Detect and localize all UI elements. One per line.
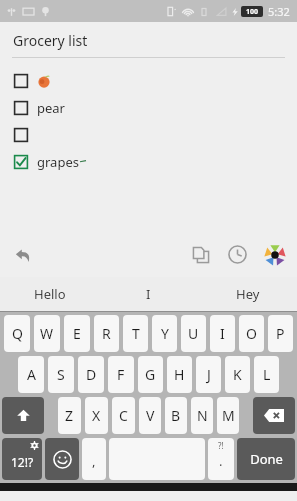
staticText: Grocery list: [13, 31, 88, 50]
other: Unchecked: [14, 128, 28, 142]
button[interactable]: Y: [152, 315, 177, 352]
button[interactable]: Hey: [198, 277, 297, 311]
button[interactable]: ,: [82, 438, 106, 480]
button[interactable]: Stickers: [259, 239, 290, 270]
staticText: X: [92, 406, 101, 425]
staticText: Hey: [236, 285, 260, 303]
staticText: ,: [92, 452, 96, 470]
staticText: I: [220, 324, 225, 343]
button[interactable]: Symbols: [2, 438, 42, 480]
button[interactable]: Done: [237, 438, 295, 480]
staticText: G: [145, 365, 156, 384]
staticText: 5:32: [268, 4, 290, 19]
button[interactable]: I: [99, 277, 198, 311]
button[interactable]: Backspace: [253, 397, 295, 434]
other: Unchecked: [14, 101, 28, 115]
staticText: W: [40, 324, 54, 343]
staticText: Z: [65, 406, 74, 425]
staticText: Done: [250, 450, 283, 468]
button[interactable]: Recent: [222, 239, 253, 270]
button[interactable]: H: [167, 356, 192, 393]
button[interactable]: V: [139, 397, 161, 434]
button[interactable]: Unchecked: [0, 121, 297, 148]
button[interactable]: J: [196, 356, 221, 393]
staticText: L: [263, 365, 271, 384]
button[interactable]: C: [112, 397, 135, 434]
button[interactable]: L: [254, 356, 279, 393]
staticText: F: [117, 365, 125, 384]
button[interactable]: X: [85, 397, 108, 434]
staticText: D: [86, 365, 97, 384]
other: Unchecked: [14, 74, 28, 88]
button[interactable]: K: [225, 356, 250, 393]
staticText: E: [73, 324, 81, 343]
button[interactable]: S: [48, 356, 74, 393]
staticText: R: [102, 324, 111, 343]
button[interactable]: B: [165, 397, 187, 434]
button[interactable]: T: [123, 315, 148, 352]
staticText: pear: [37, 99, 65, 117]
button[interactable]: G: [138, 356, 163, 393]
staticText: K: [233, 365, 242, 384]
button[interactable]: Z: [58, 397, 81, 434]
staticText: .: [219, 452, 223, 470]
button[interactable]: E: [64, 315, 90, 352]
button[interactable]: N: [191, 397, 213, 434]
button[interactable]: I: [210, 315, 235, 352]
staticText: N: [197, 406, 208, 425]
button[interactable]: D: [78, 356, 104, 393]
staticText: P: [276, 324, 285, 343]
staticText: O: [246, 324, 257, 343]
staticText: S: [57, 365, 65, 384]
staticText: I: [146, 285, 151, 303]
staticText: J: [207, 365, 211, 384]
button[interactable]: U: [181, 315, 206, 352]
staticText: Y: [161, 324, 169, 343]
staticText: U: [188, 324, 199, 343]
button[interactable]: P: [268, 315, 293, 352]
button[interactable]: M: [217, 397, 239, 434]
staticText: H: [174, 365, 185, 384]
staticText: T: [132, 324, 140, 343]
button[interactable]: ?!: [208, 438, 234, 480]
button[interactable]: A: [18, 356, 44, 393]
staticText: B: [171, 406, 181, 425]
staticText: 100: [246, 7, 259, 17]
button[interactable]: Unchecked: [0, 94, 297, 121]
button[interactable]: Emoji: [45, 438, 79, 480]
button[interactable]: F: [108, 356, 134, 393]
button[interactable]: R: [94, 315, 119, 352]
staticText: M: [222, 406, 235, 425]
staticText: 12!?: [11, 454, 34, 470]
staticText: ?!: [218, 440, 224, 451]
staticText: Hello: [34, 285, 66, 303]
staticText: Q: [12, 324, 23, 343]
staticText: A: [27, 365, 36, 384]
button[interactable]: Hello: [0, 277, 99, 311]
button[interactable]: Checked: [0, 148, 297, 175]
button[interactable]: Shift: [2, 397, 44, 434]
button[interactable]: Unchecked: [0, 67, 297, 94]
other: Checked: [14, 155, 28, 169]
button[interactable]: O: [239, 315, 264, 352]
button[interactable]: W: [34, 315, 60, 352]
button[interactable]: Q: [4, 315, 30, 352]
staticText: grapes: [37, 153, 79, 171]
button[interactable]: Undo: [8, 240, 38, 270]
staticText: C: [119, 406, 128, 425]
button[interactable]: Copy: [185, 239, 216, 270]
staticText: V: [146, 406, 155, 425]
